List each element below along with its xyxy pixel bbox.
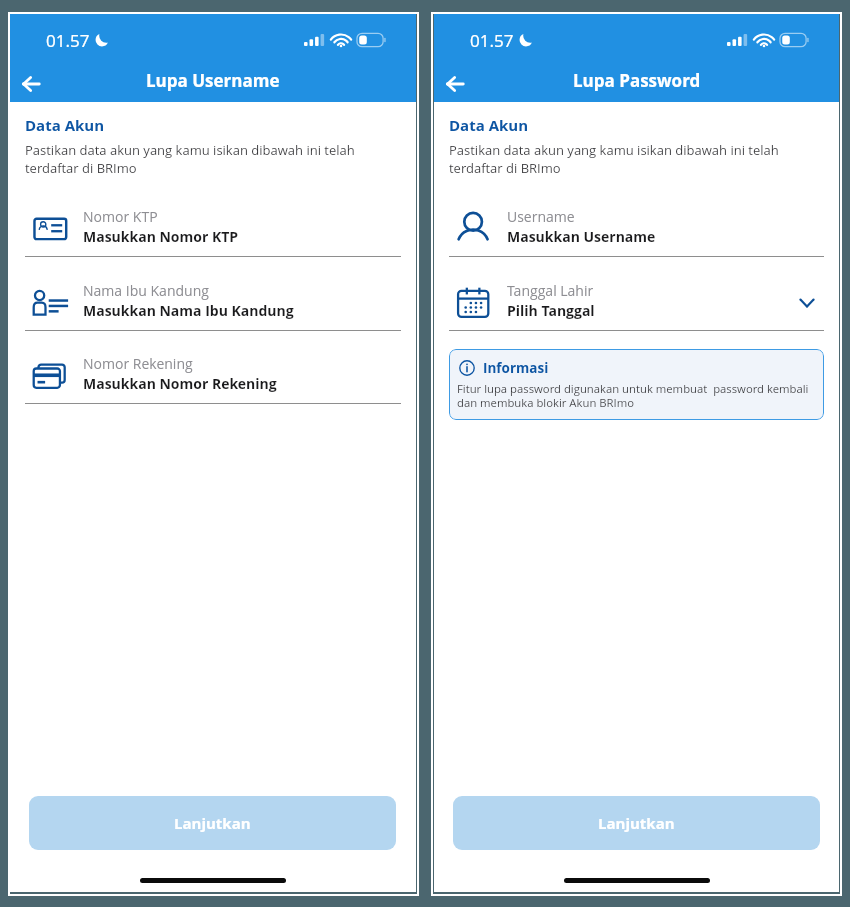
button[interactable]: Tanggal Lahir (449, 270, 824, 331)
staticText: Informasi (483, 359, 549, 377)
staticText: Username (507, 207, 575, 226)
staticText: Nama Ibu Kandung (83, 281, 209, 300)
staticText: 01.57 (46, 29, 90, 52)
button[interactable]: Back (11, 64, 51, 104)
staticText: Masukkan Nama Ibu Kandung (83, 301, 294, 320)
button[interactable]: Username (449, 196, 824, 257)
staticText: Masukkan Nomor KTP (83, 227, 239, 246)
button[interactable]: Lanjutkan (29, 796, 396, 850)
staticText: Pilih Tanggal (507, 301, 595, 320)
staticText: Lupa Username (146, 69, 280, 92)
staticText: Tanggal Lahir (507, 281, 594, 300)
staticText: Data Akun (449, 115, 528, 135)
button[interactable]: Nomor Rekening (25, 343, 401, 404)
button[interactable]: Back (435, 64, 475, 104)
staticText: 01.57 (470, 29, 514, 52)
staticText: Pastikan data akun yang kamu isikan diba… (25, 141, 401, 177)
staticText: Pastikan data akun yang kamu isikan diba… (449, 141, 824, 177)
staticText: Fitur lupa password digunakan untuk memb… (457, 381, 816, 410)
button[interactable]: Nomor KTP (25, 196, 401, 257)
button[interactable]: Nama Ibu Kandung (25, 270, 401, 331)
staticText: Nomor KTP (83, 207, 158, 226)
staticText: Lanjutkan (174, 813, 251, 833)
staticText: Lupa Password (573, 69, 701, 92)
button[interactable]: Lanjutkan (453, 796, 820, 850)
staticText: Masukkan Username (507, 227, 656, 246)
staticText: Lanjutkan (598, 813, 675, 833)
staticText: Masukkan Nomor Rekening (83, 374, 277, 393)
staticText: Nomor Rekening (83, 354, 193, 373)
staticText: Data Akun (25, 115, 104, 135)
